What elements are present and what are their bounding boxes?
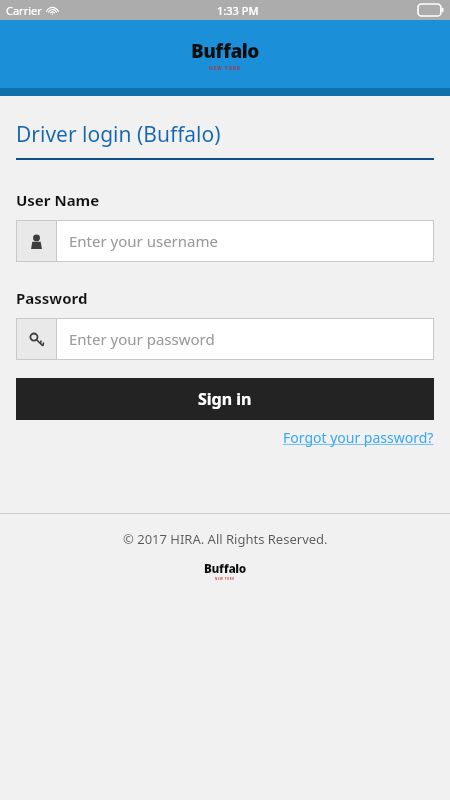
staticText: Enter your username bbox=[69, 231, 218, 251]
other: Password bbox=[29, 332, 44, 347]
staticText: Enter your password bbox=[69, 329, 215, 349]
staticText: Password bbox=[16, 288, 88, 308]
button[interactable]: Forgot your password? bbox=[283, 428, 434, 447]
staticText: Carrier bbox=[6, 3, 42, 18]
staticText: NEW YORK bbox=[209, 65, 241, 71]
button[interactable]: Sign in bbox=[16, 378, 434, 420]
staticText: Buffalo bbox=[204, 560, 246, 576]
button[interactable]: Password bbox=[16, 318, 434, 360]
staticText: Forgot your password? bbox=[283, 428, 434, 447]
button[interactable]: User bbox=[16, 220, 434, 262]
other: User bbox=[29, 234, 44, 249]
staticText: © 2017 HIRA. All Rights Reserved. bbox=[123, 530, 328, 548]
staticText: 1:33 PM bbox=[217, 3, 259, 18]
staticText: NEW YORK bbox=[215, 577, 235, 581]
staticText: Driver login (Buffalo) bbox=[16, 120, 221, 149]
staticText: User Name bbox=[16, 190, 100, 210]
staticText: Buffalo bbox=[191, 38, 259, 64]
staticText: Sign in bbox=[198, 388, 252, 410]
